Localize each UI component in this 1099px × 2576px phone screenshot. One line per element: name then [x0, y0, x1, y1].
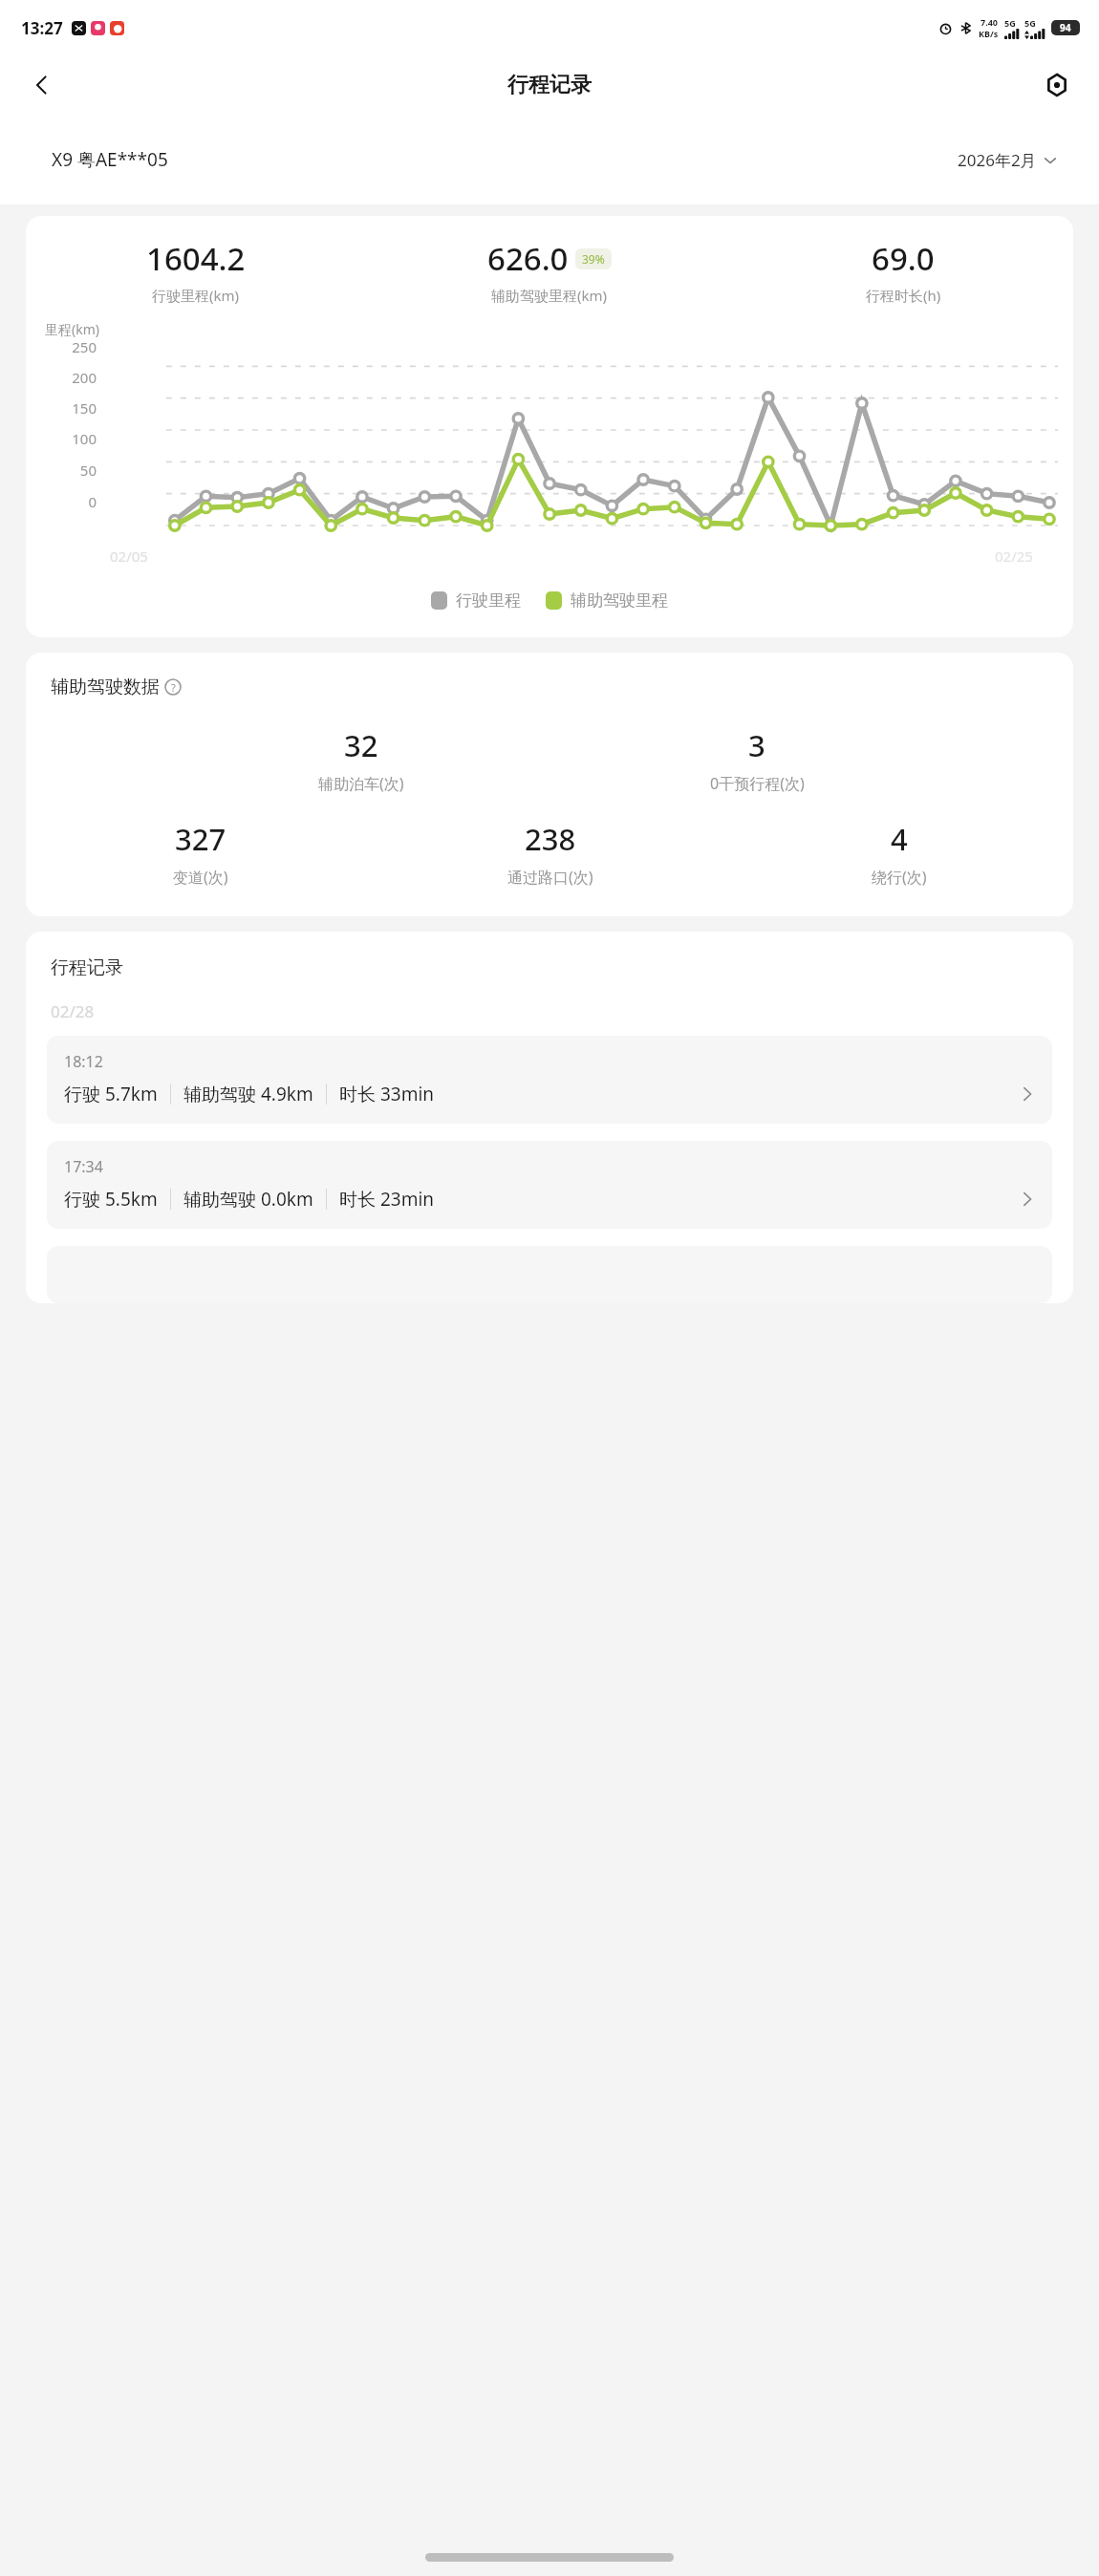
- staticText: 150: [72, 398, 97, 418]
- staticText: 辅助驾驶 0.0km: [183, 1187, 313, 1212]
- staticText: 238: [525, 819, 576, 859]
- staticText: 5G: [1024, 17, 1036, 29]
- staticText: 7.40: [980, 16, 998, 28]
- staticText: 32: [344, 725, 378, 765]
- button[interactable]: 2026年2月: [958, 149, 1057, 171]
- staticText: 辅助驾驶数据: [51, 676, 160, 698]
- button[interactable]: Help: [163, 677, 183, 697]
- staticText: 94: [1060, 21, 1071, 34]
- staticText: 327: [175, 819, 226, 859]
- staticText: 时长 23min: [339, 1187, 435, 1212]
- staticText: 3: [748, 725, 765, 765]
- button[interactable]: 18:12: [47, 1036, 1052, 1124]
- staticText: 行程记录: [507, 72, 592, 98]
- staticText: 5G: [1004, 17, 1016, 29]
- staticText: 100: [72, 429, 97, 448]
- staticText: 69.0: [872, 237, 935, 280]
- staticText: 4: [891, 819, 908, 859]
- staticText: 39%: [582, 251, 605, 267]
- staticText: ?: [171, 680, 176, 695]
- staticText: KB/s: [979, 28, 999, 39]
- staticText: 变道(次): [173, 867, 228, 888]
- staticText: 行驶里程: [456, 590, 521, 611]
- staticText: 辅助驾驶 4.9km: [183, 1082, 313, 1106]
- staticText: 辅助驾驶里程: [571, 590, 668, 611]
- button[interactable]: Settings: [1036, 64, 1078, 106]
- staticText: 辅助泊车(次): [318, 773, 404, 794]
- staticText: 辅助驾驶里程(km): [491, 286, 608, 305]
- staticText: 0干预行程(次): [710, 773, 805, 794]
- staticText: 行程记录: [51, 956, 123, 979]
- staticText: 18:12: [64, 1051, 103, 1072]
- staticText: 02/28: [51, 1000, 95, 1022]
- staticText: 02/25: [995, 547, 1033, 566]
- staticText: 行驶里程(km): [152, 286, 240, 305]
- staticText: 行驶 5.7km: [64, 1082, 158, 1106]
- staticText: 13:27: [21, 17, 63, 39]
- staticText: 0: [88, 492, 97, 511]
- staticText: 02/05: [110, 547, 148, 566]
- staticText: 17:34: [64, 1156, 103, 1177]
- staticText: 626.0: [487, 237, 569, 280]
- staticText: 行驶 5.5km: [64, 1187, 158, 1212]
- staticText: 绕行(次): [872, 867, 927, 888]
- staticText: 行程时长(h): [866, 286, 941, 305]
- staticText: 1604.2: [146, 237, 246, 280]
- staticText: 200: [72, 368, 97, 387]
- staticText: 里程(km): [45, 320, 99, 338]
- staticText: 250: [72, 337, 97, 356]
- button[interactable]: 17:34: [47, 1141, 1052, 1229]
- staticText: 通过路口(次): [507, 867, 593, 888]
- staticText: X9 粤AE***05: [52, 147, 168, 172]
- staticText: 时长 33min: [339, 1082, 435, 1106]
- staticText: 2026年2月: [958, 149, 1037, 171]
- staticText: 50: [79, 461, 97, 480]
- button[interactable]: Back: [21, 64, 63, 106]
